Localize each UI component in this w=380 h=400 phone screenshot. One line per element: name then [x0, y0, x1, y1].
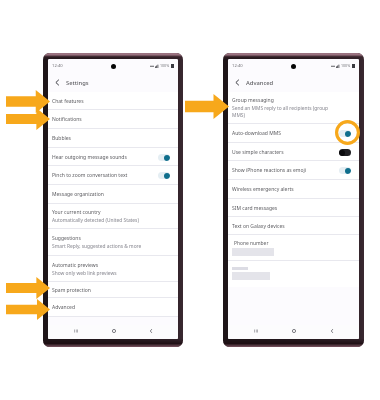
staticText: Auto-download MMS	[232, 130, 282, 137]
staticText: Chat features	[52, 98, 84, 105]
button[interactable]: Back	[146, 326, 155, 335]
button[interactable]: Recent apps	[71, 326, 80, 335]
staticText: Automatically detected (United States)	[52, 217, 139, 224]
staticText: Advanced	[52, 304, 76, 311]
button[interactable]: Pinch to zoom conversation text	[48, 166, 178, 185]
button[interactable]: Advanced	[48, 298, 178, 317]
staticText: 100%	[160, 63, 170, 68]
button[interactable]: Use simple characters	[228, 143, 359, 161]
staticText: Message organization	[52, 191, 104, 198]
staticText: Hear outgoing message sounds	[52, 154, 127, 161]
staticText: Suggestions	[52, 235, 81, 242]
staticText: Automatic previews	[52, 262, 99, 269]
button[interactable]: Back	[233, 78, 274, 87]
button[interactable]: Toggle on	[158, 154, 170, 161]
staticText: 12:40	[232, 63, 243, 69]
button[interactable]: Home	[289, 326, 298, 335]
staticText: Your current country	[52, 209, 101, 216]
staticText: MMS)	[232, 112, 245, 119]
button[interactable]: Home	[109, 326, 118, 335]
staticText: 100%	[341, 63, 351, 68]
button[interactable]: Notifications	[48, 110, 178, 129]
staticText: Show only web link previews	[52, 270, 117, 277]
button[interactable]: Group messaging	[228, 92, 359, 124]
button[interactable]: SIM card messages	[228, 199, 359, 217]
staticText: 12:40	[52, 63, 63, 69]
button[interactable]: Back	[327, 326, 336, 335]
button[interactable]: Bubbles	[48, 129, 178, 148]
staticText: Wireless emergency alerts	[232, 186, 294, 193]
staticText: Show iPhone reactions as emoji	[232, 167, 307, 174]
button[interactable]: Toggle on	[339, 167, 351, 174]
button[interactable]: Toggle on	[339, 130, 351, 137]
staticText: SIM card messages	[232, 205, 278, 212]
staticText: Advanced	[246, 79, 274, 87]
staticText: Send an MMS reply to all recipients (gro…	[232, 105, 329, 112]
button[interactable]: Back	[53, 78, 89, 87]
staticText: Spam protection	[52, 287, 91, 294]
button[interactable]: Recent apps	[251, 326, 260, 335]
button[interactable]: Automatic previews	[48, 256, 178, 282]
button[interactable]: Text on Galaxy devices	[228, 217, 359, 235]
button[interactable]: Chat features	[48, 92, 178, 110]
button[interactable]: Message organization	[48, 185, 178, 204]
other: Back	[233, 78, 242, 87]
button[interactable]: Spam protection	[48, 282, 178, 298]
staticText: Settings	[66, 79, 89, 87]
button[interactable]: Toggle on	[158, 172, 170, 179]
button[interactable]: Wireless emergency alerts	[228, 180, 359, 199]
staticText: Pinch to zoom conversation text	[52, 172, 128, 179]
button[interactable]: Show iPhone reactions as emoji	[228, 161, 359, 180]
staticText: Phone number	[234, 240, 269, 247]
button[interactable]: Toggle off	[339, 149, 351, 156]
button[interactable]: Auto-download MMS	[228, 124, 359, 143]
staticText: Smart Reply, suggested actions & more	[52, 243, 142, 250]
staticText: Bubbles	[52, 135, 71, 142]
button[interactable]: Suggestions	[48, 229, 178, 256]
staticText: Group messaging	[232, 97, 274, 104]
staticText: Notifications	[52, 116, 82, 123]
button[interactable]: Your current country	[48, 204, 178, 229]
staticText: Text on Galaxy devices	[232, 223, 285, 230]
other: Back	[53, 78, 62, 87]
button[interactable]: Phone number	[228, 235, 359, 261]
staticText: Use simple characters	[232, 149, 284, 156]
button[interactable]: Hear outgoing message sounds	[48, 148, 178, 166]
